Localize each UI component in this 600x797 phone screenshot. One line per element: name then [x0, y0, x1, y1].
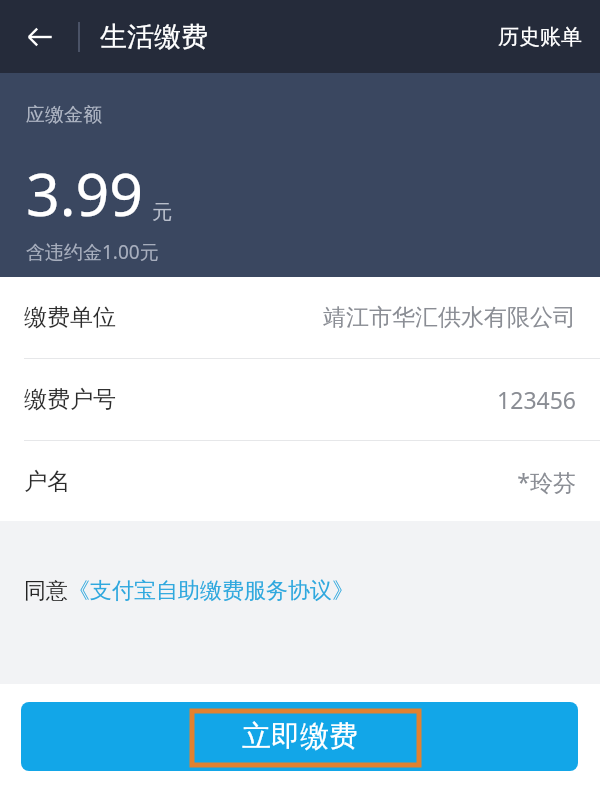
staticText: 元	[152, 200, 172, 225]
staticText: 历史账单	[498, 24, 582, 50]
button[interactable]: 缴费户号	[0, 359, 600, 440]
button[interactable]: Back	[12, 9, 68, 65]
staticText: 缴费单位	[24, 303, 116, 332]
staticText: 123456	[497, 384, 576, 415]
button[interactable]: 同意《支付宝自助缴费服务协议》	[0, 571, 366, 611]
button[interactable]: 立即缴费	[21, 702, 578, 771]
staticText: 应缴金额	[26, 103, 102, 127]
staticText: 户名	[24, 467, 70, 496]
staticText: 含违约金1.00元	[26, 239, 159, 265]
button[interactable]: 缴费单位	[0, 277, 600, 358]
staticText: 缴费户号	[24, 385, 116, 414]
staticText: 3.99	[26, 153, 144, 233]
staticText: 立即缴费	[242, 718, 358, 755]
staticText: *玲芬	[517, 466, 576, 497]
staticText: 生活缴费	[100, 20, 208, 54]
staticText: 靖江市华汇供水有限公司	[323, 303, 576, 332]
staticText: 同意《支付宝自助缴费服务协议》	[24, 577, 354, 605]
button[interactable]: 历史账单	[480, 10, 600, 64]
button[interactable]: 户名	[0, 441, 600, 521]
